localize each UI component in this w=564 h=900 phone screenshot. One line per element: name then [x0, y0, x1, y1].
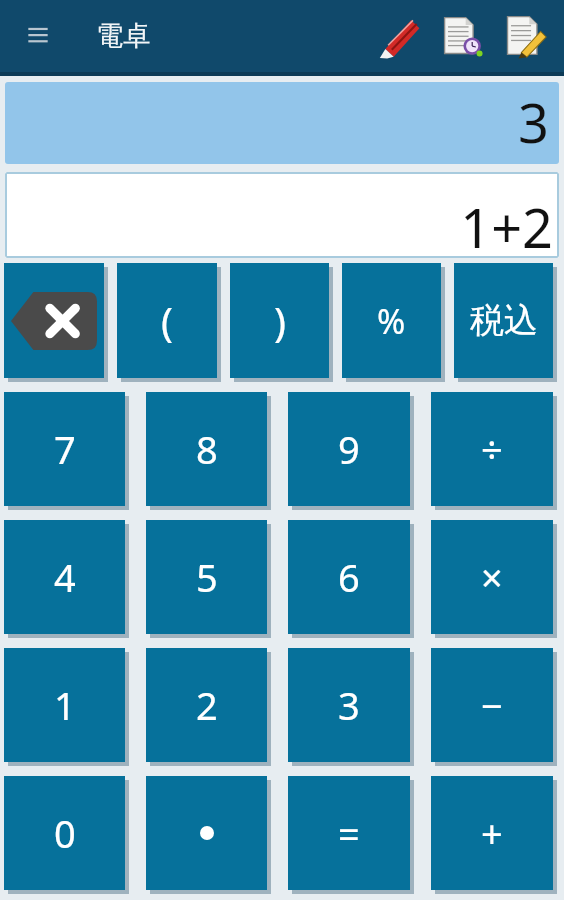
button[interactable]: + — [431, 776, 557, 894]
staticText: % — [377, 298, 406, 344]
button[interactable]: % — [342, 263, 445, 382]
button[interactable]: ( — [117, 263, 221, 382]
staticText: 電卓 — [96, 19, 150, 53]
staticText: − — [481, 679, 503, 731]
button[interactable]: 0 — [4, 776, 129, 894]
staticText: 0 — [54, 807, 76, 859]
button[interactable]: ) — [230, 263, 333, 382]
button[interactable]: 4 — [4, 520, 129, 638]
button[interactable]: 1+2 — [5, 172, 559, 258]
staticText: 2 — [196, 679, 218, 731]
button[interactable]: = — [288, 776, 414, 894]
button[interactable]: 5 — [146, 520, 271, 638]
button[interactable]: 3 — [288, 648, 414, 766]
staticText: ) — [274, 294, 286, 348]
button[interactable]: Memo — [494, 5, 556, 67]
staticText: 7 — [54, 423, 76, 475]
staticText: = — [338, 807, 360, 859]
button[interactable]: 3 — [5, 82, 559, 164]
button[interactable]: History — [432, 5, 494, 67]
button[interactable]: 8 — [146, 392, 271, 510]
button[interactable]: 6 — [288, 520, 414, 638]
button[interactable]: 1 — [4, 648, 129, 766]
staticText: 1 — [54, 679, 76, 731]
button[interactable]: − — [431, 648, 557, 766]
staticText: 3 — [338, 679, 360, 731]
button[interactable]: 7 — [4, 392, 129, 510]
button[interactable]: Clear all — [370, 5, 432, 67]
staticText: ( — [161, 294, 173, 348]
button[interactable]: 2 — [146, 648, 271, 766]
button[interactable]: 税込 — [454, 263, 557, 382]
button[interactable]: × — [431, 520, 557, 638]
button[interactable]: Decimal point — [146, 776, 271, 894]
staticText: × — [481, 551, 503, 603]
staticText: + — [481, 807, 503, 859]
staticText: 3 — [518, 85, 549, 159]
staticText: 1+2 — [460, 190, 553, 258]
button[interactable]: Menu — [18, 16, 58, 56]
staticText: 5 — [196, 551, 218, 603]
staticText: 6 — [338, 551, 360, 603]
staticText: ÷ — [481, 423, 503, 475]
button[interactable]: Backspace — [4, 263, 108, 382]
staticText: 8 — [196, 423, 218, 475]
staticText: 税込 — [470, 299, 538, 342]
button[interactable]: 9 — [288, 392, 414, 510]
staticText: 4 — [54, 551, 76, 603]
staticText: 9 — [338, 423, 360, 475]
button[interactable]: ÷ — [431, 392, 557, 510]
